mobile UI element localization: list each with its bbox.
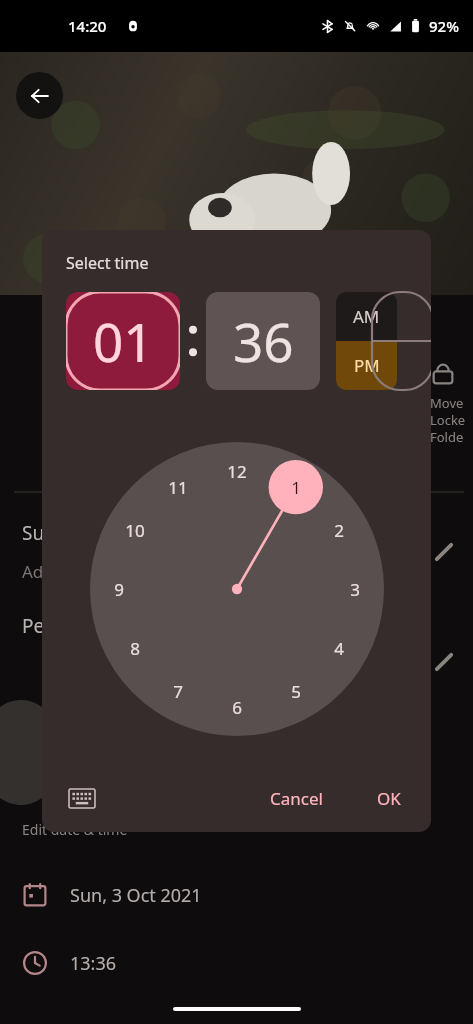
button[interactable]: 6 — [90, 442, 384, 736]
button[interactable]: 01 — [66, 292, 180, 390]
staticText: 14:20 — [68, 16, 107, 36]
button[interactable]: 9 — [90, 442, 384, 736]
button[interactable]: 5 — [90, 442, 384, 736]
button[interactable]: AM — [336, 292, 397, 341]
staticText: 7 — [173, 680, 183, 703]
staticText: Cancel — [270, 787, 323, 810]
button[interactable]: 13:36 — [0, 938, 473, 988]
staticText: 8 — [130, 637, 140, 660]
staticText: 5 — [291, 680, 301, 703]
staticText: 4 — [334, 637, 344, 660]
staticText: 12 — [227, 460, 247, 483]
button[interactable]: Back — [16, 72, 63, 119]
button[interactable]: 8 — [90, 442, 384, 736]
staticText: Su — [22, 520, 45, 546]
staticText: Select time — [66, 252, 149, 274]
staticText: Edit date & time — [22, 820, 128, 839]
staticText: 1 — [291, 476, 301, 499]
staticText: 3 — [350, 578, 360, 601]
staticText: 11 — [168, 476, 188, 499]
button[interactable]: 4 — [90, 442, 384, 736]
button[interactable]: Sun, 3 Oct 2021 — [0, 870, 473, 920]
staticText: Move Locke Folde — [430, 394, 466, 446]
staticText: PM — [354, 354, 380, 377]
button[interactable]: 3 — [90, 442, 384, 736]
staticText: Ad — [22, 560, 44, 583]
staticText: AM — [353, 305, 380, 328]
button[interactable]: OK — [363, 779, 415, 818]
staticText: Pe — [22, 613, 45, 639]
staticText: 10 — [125, 519, 145, 542]
button[interactable]: 10 — [90, 442, 384, 736]
button[interactable]: 36 — [206, 292, 320, 390]
staticText: OK — [377, 787, 401, 810]
button[interactable]: Switch to text input — [60, 776, 104, 820]
button[interactable]: 7 — [90, 442, 384, 736]
button[interactable]: Cancel — [256, 779, 337, 818]
button[interactable]: 2 — [90, 442, 384, 736]
staticText: 01 — [93, 305, 154, 377]
staticText: 36 — [233, 305, 294, 377]
staticText: 92% — [429, 16, 459, 36]
staticText: 13:36 — [70, 951, 117, 976]
staticText: 6 — [232, 696, 242, 719]
button[interactable]: 12 — [90, 442, 384, 736]
button[interactable]: 11 — [90, 442, 384, 736]
staticText: Sun, 3 Oct 2021 — [70, 883, 202, 908]
staticText: 2 — [334, 519, 344, 542]
button[interactable]: PM — [336, 341, 397, 390]
button[interactable]: 1 — [90, 442, 384, 736]
staticText: 9 — [114, 578, 124, 601]
